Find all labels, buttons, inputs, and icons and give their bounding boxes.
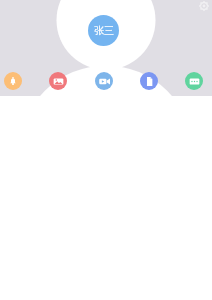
button[interactable]: Files (140, 72, 158, 90)
button[interactable]: Settings (197, 0, 211, 13)
button[interactable]: Notifications (4, 72, 22, 90)
button[interactable]: Photos (49, 72, 67, 90)
button[interactable]: Video (95, 72, 113, 90)
staticText: 张三 (94, 24, 114, 37)
button[interactable]: Messages (185, 72, 203, 90)
button[interactable]: 张三 (88, 15, 119, 46)
